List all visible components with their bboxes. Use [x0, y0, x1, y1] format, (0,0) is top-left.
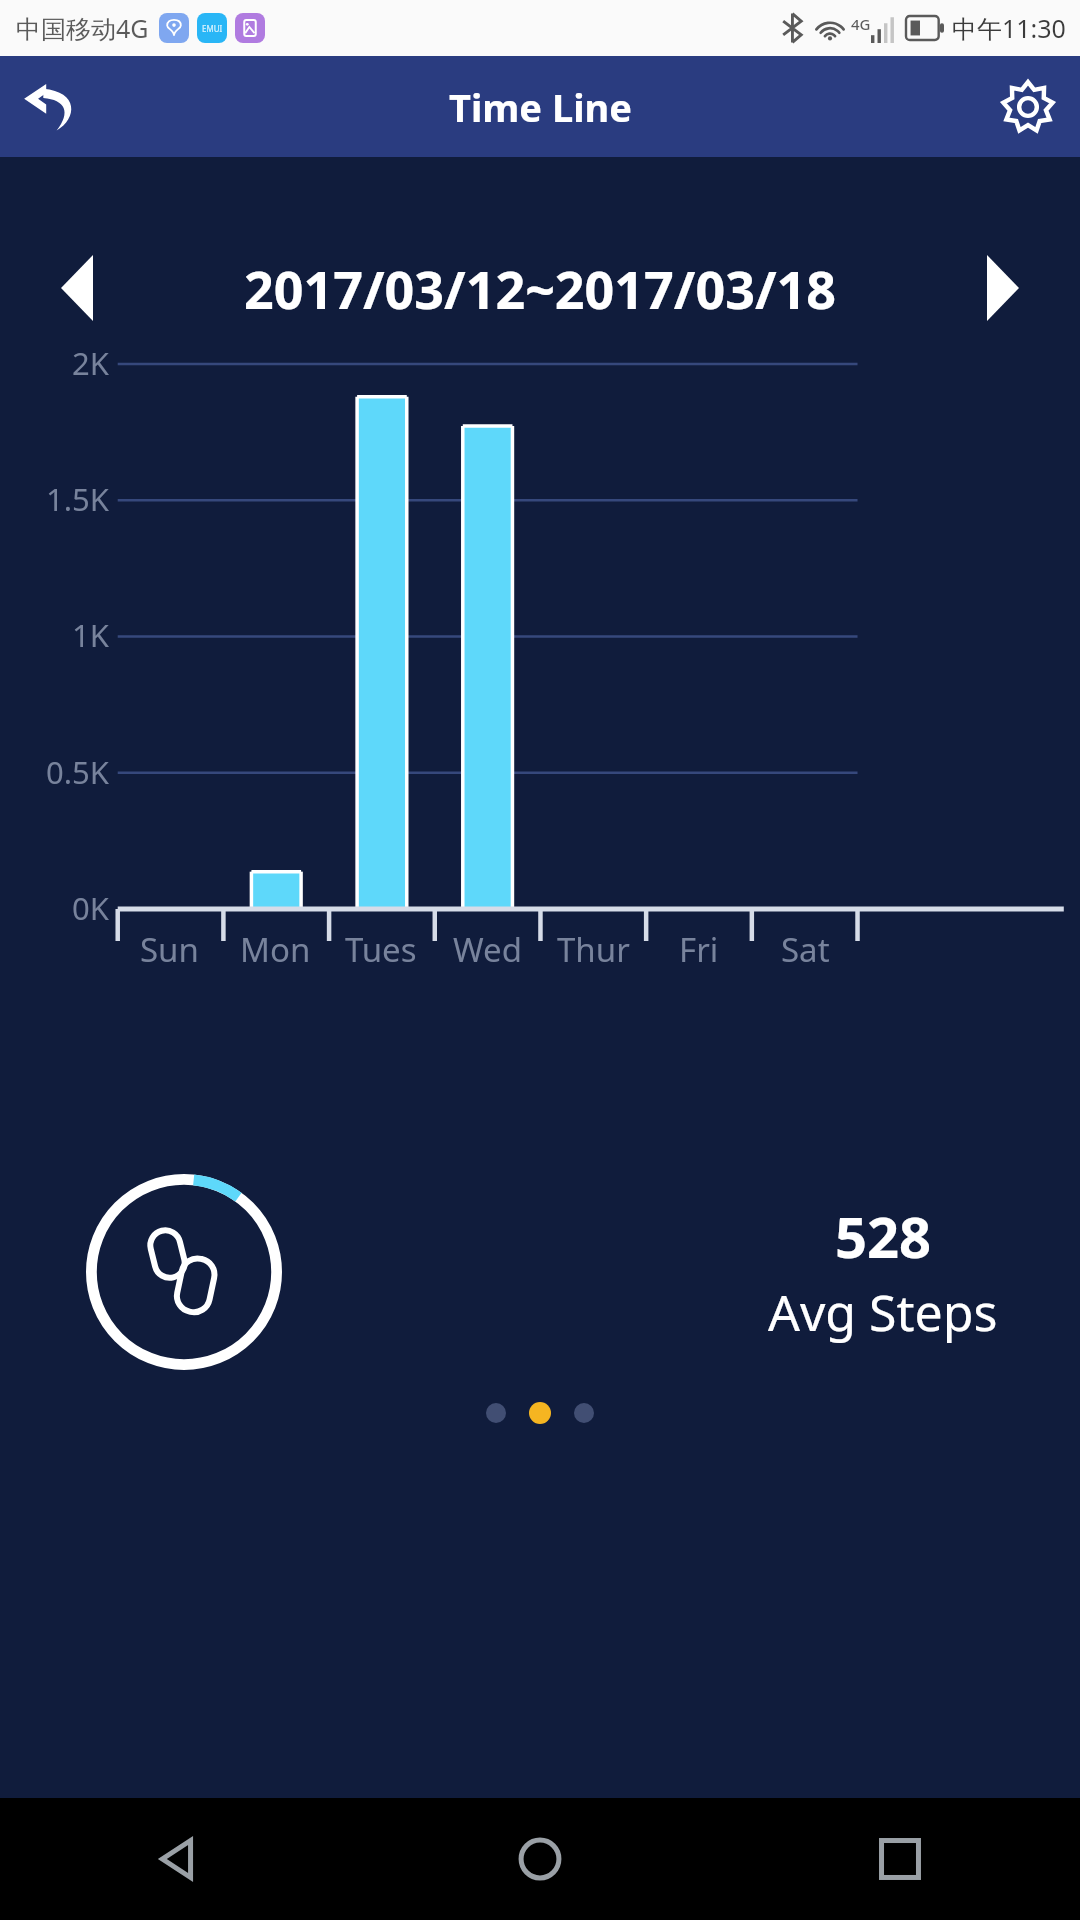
staticText: 0.5K [46, 751, 109, 793]
button[interactable]: Settings [976, 56, 1080, 157]
staticText: 528 [835, 1198, 932, 1274]
button[interactable]: Back [0, 56, 104, 157]
staticText: Sun [140, 927, 199, 972]
staticText: Thur [557, 927, 630, 972]
staticText: 4G [851, 14, 871, 34]
button[interactable]: Home [360, 1798, 720, 1920]
staticText: Time Line [449, 81, 632, 133]
button[interactable]: Steps progress [86, 1174, 282, 1370]
staticText: Sat [781, 927, 830, 972]
button[interactable]: Page 3 [574, 1403, 594, 1423]
button[interactable]: Page 1 [486, 1403, 506, 1423]
staticText: 中国移动4G [16, 11, 149, 45]
staticText: 1.5K [46, 478, 109, 520]
button[interactable]: Recent apps [720, 1798, 1080, 1920]
staticText: Tues [345, 927, 417, 972]
staticText: Mon [240, 927, 311, 972]
staticText: Wed [453, 927, 522, 972]
staticText: 1K [72, 614, 109, 656]
button[interactable]: Previous week [42, 241, 112, 335]
staticText: Avg Steps [768, 1278, 998, 1346]
staticText: EMUI [202, 23, 223, 34]
button[interactable]: Next week [968, 241, 1038, 335]
staticText: 2K [72, 342, 109, 384]
button[interactable]: Back [0, 1798, 360, 1920]
button[interactable]: Page 2 [529, 1402, 551, 1424]
staticText: 2017/03/12~2017/03/18 [112, 253, 968, 324]
staticText: Fri [679, 927, 719, 972]
staticText: 0K [72, 887, 109, 929]
staticText: 中午11:30 [952, 11, 1066, 45]
